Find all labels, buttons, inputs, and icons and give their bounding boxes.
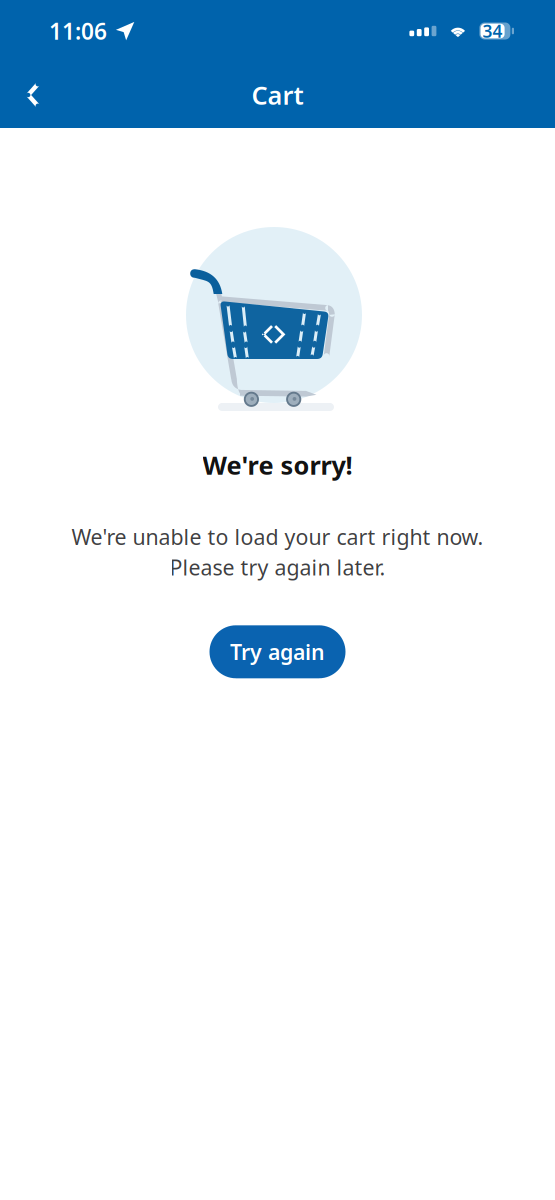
staticText: Try again [230, 638, 325, 666]
button[interactable]: Back [0, 70, 60, 120]
staticText: We're sorry! [202, 448, 352, 482]
staticText: 11:06 [49, 16, 107, 46]
staticText: Please try again later. [169, 553, 385, 581]
staticText: We're unable to load your cart right now… [71, 523, 483, 551]
staticText: Cart [251, 78, 303, 112]
button[interactable]: Try again [209, 625, 345, 678]
staticText: 34 [483, 19, 503, 42]
